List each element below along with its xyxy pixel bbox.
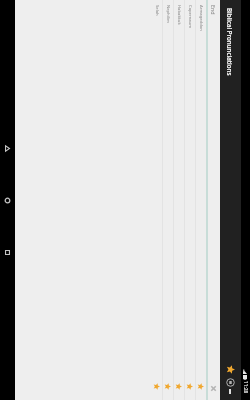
staticText: Habakkuk — [176, 5, 182, 25]
button[interactable]: Recents — [0, 226, 15, 278]
button[interactable]: Favorite — [185, 381, 195, 391]
button[interactable]: Back — [0, 122, 15, 174]
button[interactable]: Favorites — [222, 364, 239, 375]
staticText: Armageddon — [198, 5, 204, 31]
staticText: Biblical Pronunciations — [226, 8, 234, 76]
staticText: Capernaum — [187, 5, 193, 29]
staticText: 11:28 — [242, 381, 249, 394]
button[interactable]: Nephilim — [163, 0, 173, 400]
button[interactable]: Favorite — [152, 381, 162, 391]
staticText: End — [210, 5, 217, 15]
button[interactable]: Armageddon — [196, 0, 206, 400]
staticText: Selah — [154, 5, 160, 16]
staticText: Nephilim — [165, 5, 171, 23]
button[interactable]: Biblical Pronunciations — [220, 0, 241, 400]
button[interactable]: More options — [222, 377, 239, 388]
button[interactable]: End — [208, 0, 220, 400]
button[interactable]: Capernaum — [185, 0, 195, 400]
button[interactable]: Favorite — [163, 381, 173, 391]
button[interactable]: Clear search — [208, 382, 220, 395]
button[interactable]: Home — [0, 174, 15, 226]
button[interactable]: Favorite — [174, 381, 184, 391]
button[interactable]: Selah — [152, 0, 162, 400]
button[interactable]: Favorite — [196, 381, 206, 391]
button[interactable]: Habakkuk — [174, 0, 184, 400]
